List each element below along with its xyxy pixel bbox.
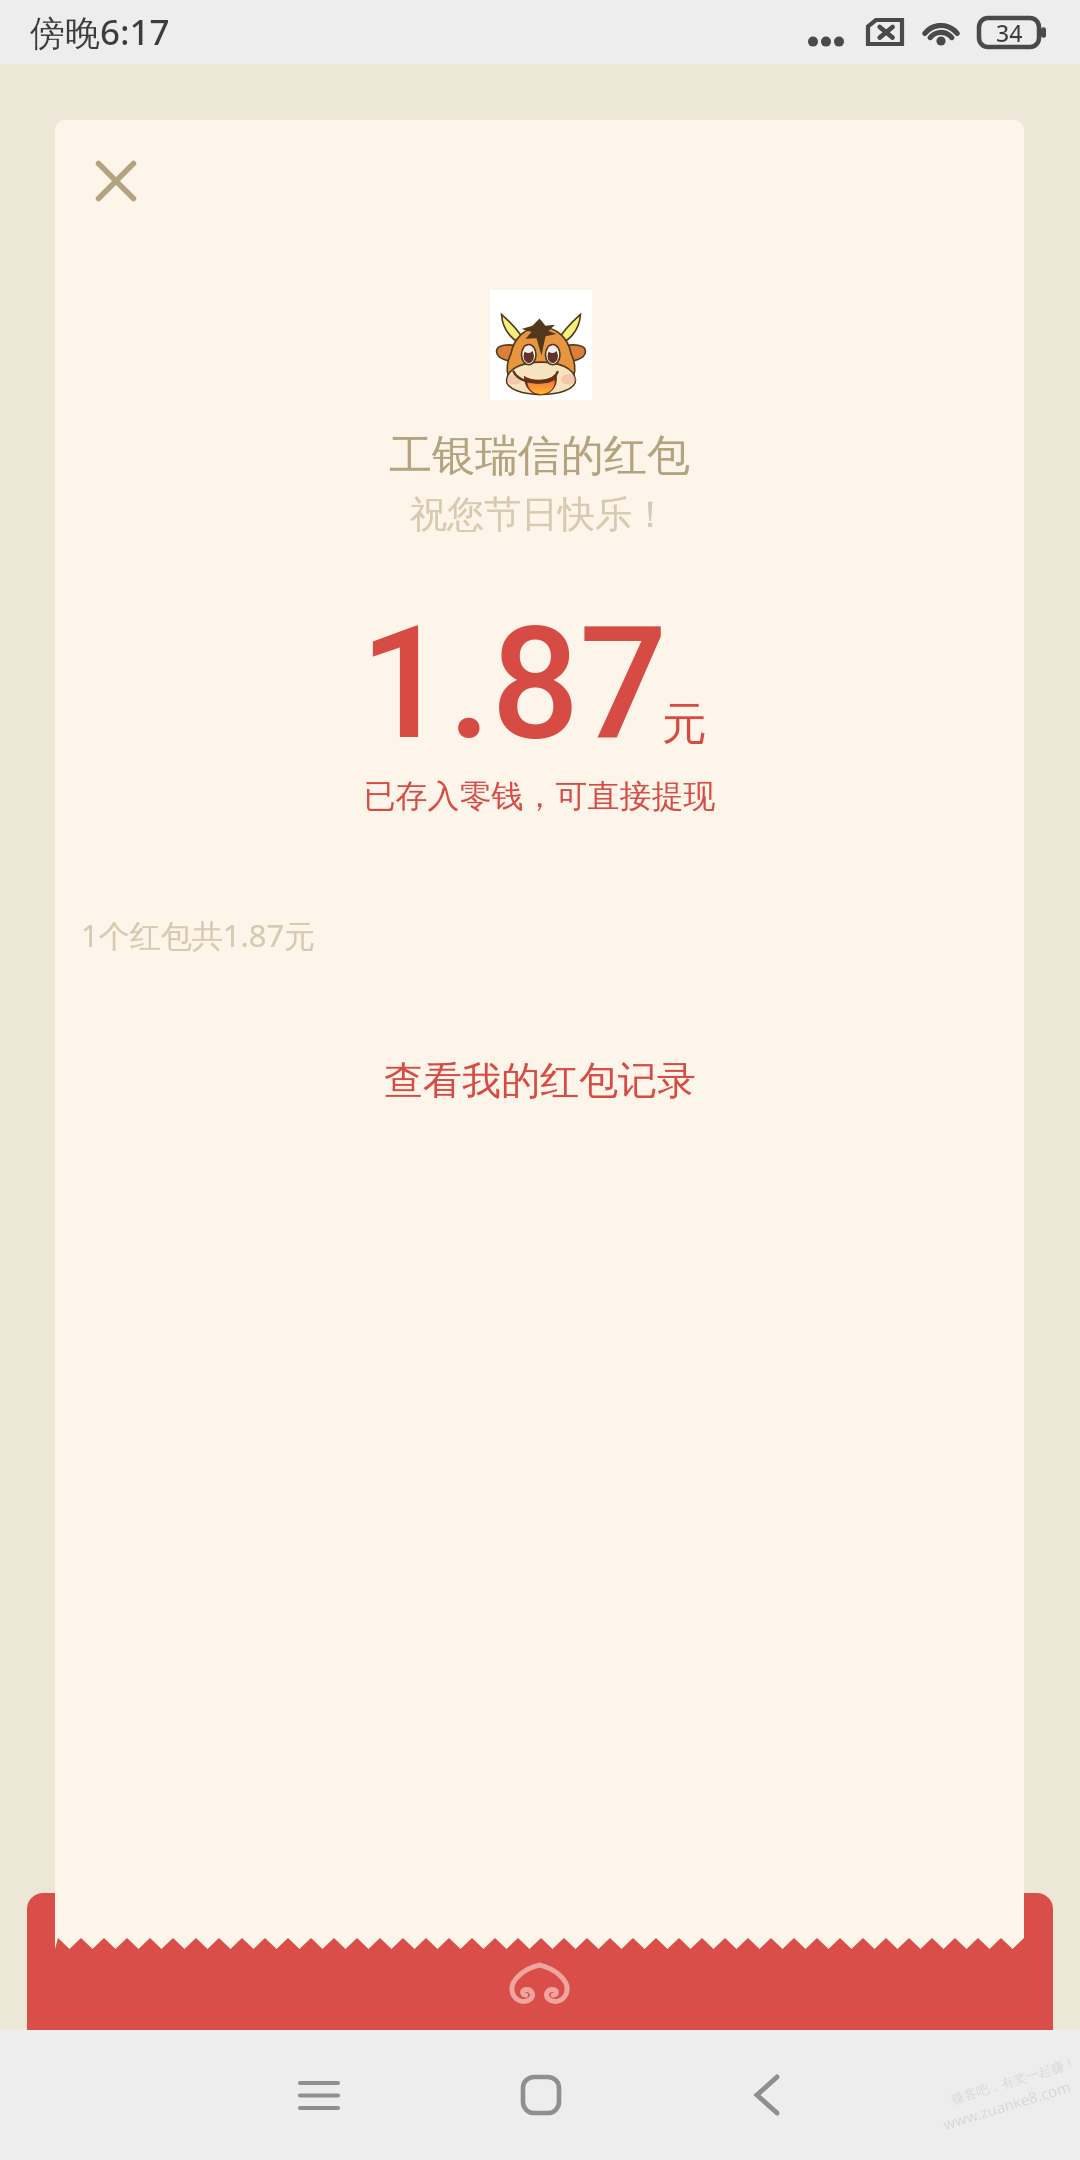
button[interactable]: Close xyxy=(76,141,156,221)
staticText: 元 xyxy=(662,696,707,753)
staticText: 赚客吧，有奖一起赚！ xyxy=(949,2054,1078,2107)
staticText: 祝您节日快乐！ xyxy=(55,491,1024,538)
staticText: 工银瑞信的红包 xyxy=(55,429,1024,483)
button[interactable]: Home xyxy=(491,2045,591,2145)
button[interactable]: Back xyxy=(717,2045,817,2145)
staticText: 1.87 xyxy=(360,593,668,775)
button[interactable]: Recent apps xyxy=(269,2045,369,2145)
staticText: www.zuanke8.com xyxy=(941,2076,1074,2134)
staticText: 傍晚6:17 xyxy=(30,8,170,56)
button[interactable]: 查看我的红包记录 xyxy=(55,1048,1024,1113)
staticText: 34 xyxy=(996,17,1023,48)
staticText: 查看我的红包记录 xyxy=(384,1056,696,1105)
staticText: 已存入零钱，可直接提现 xyxy=(55,776,1024,816)
staticText: 1个红包共1.87元 xyxy=(81,914,316,956)
